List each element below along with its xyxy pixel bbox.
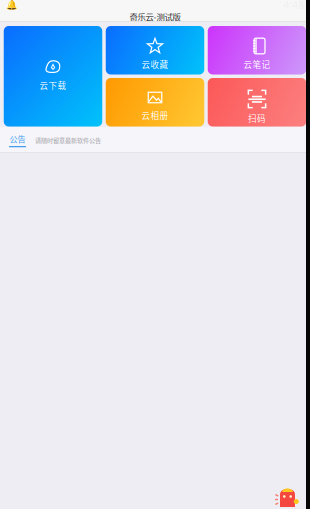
button[interactable]: 扫码 (208, 78, 306, 126)
staticText: 云笔记 (243, 58, 270, 70)
button[interactable]: 云笔记 (208, 26, 306, 74)
staticText: 扫码 (248, 112, 266, 124)
button[interactable]: 公告 (0, 127, 310, 153)
button[interactable]: 云下载 (4, 26, 102, 126)
staticText: 云收藏 (141, 58, 168, 70)
button[interactable]: 云收藏 (106, 26, 204, 74)
staticText: 🔔 (6, 0, 18, 10)
staticText: 请随时留意最新软件公告 (35, 136, 101, 144)
staticText: 云相册 (141, 109, 168, 121)
button[interactable]: 云相册 (106, 78, 204, 126)
staticText: 公告 (9, 133, 25, 145)
button[interactable]: Customer service (277, 485, 299, 509)
staticText: 云下载 (39, 79, 66, 91)
staticText: 奇乐云-测试版 (129, 10, 180, 23)
